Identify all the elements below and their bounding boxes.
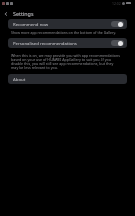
staticText: 12:02: [112, 1, 121, 6]
button[interactable]: Personalised recommendations: [8, 38, 127, 48]
staticText: About: [13, 76, 26, 82]
button[interactable]: Toggle: [111, 21, 124, 27]
button[interactable]: About: [8, 74, 127, 84]
staticText: Show more app recommendations on the bot…: [11, 30, 117, 35]
staticText: Settings: [13, 10, 34, 17]
staticText: When this is on, we may provide you with…: [11, 53, 121, 70]
staticText: Personalised recommendations: [13, 40, 77, 46]
button[interactable]: Toggle: [111, 40, 124, 46]
button[interactable]: Back: [0, 8, 11, 19]
button[interactable]: Recommend now: [8, 19, 127, 29]
staticText: Recommend now: [13, 21, 49, 27]
